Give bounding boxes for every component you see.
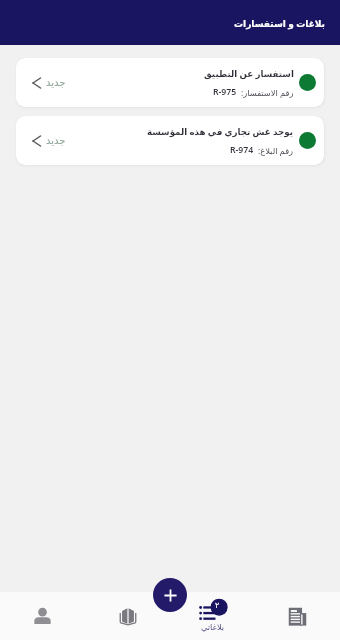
staticText: بلاغاتي xyxy=(201,622,225,632)
staticText: جديد xyxy=(46,77,66,89)
staticText: بلاغات و استفسارات xyxy=(234,17,325,29)
button[interactable]: Guide xyxy=(85,592,170,640)
staticText: ‏رقم الاستفسار:‏ xyxy=(241,87,294,98)
button[interactable]: Profile xyxy=(0,592,85,640)
staticText: جديد xyxy=(46,135,66,147)
staticText: استفسار عن التطبيق xyxy=(204,68,294,80)
button[interactable]: News xyxy=(255,592,340,640)
staticText: ‏رقم البلاغ:‏ xyxy=(258,145,294,156)
button[interactable]: جديد xyxy=(16,116,324,165)
button[interactable]: جديد xyxy=(16,58,324,107)
button[interactable]: ٢ xyxy=(170,592,255,640)
button[interactable]: Add new report xyxy=(153,578,187,612)
staticText: R-974 xyxy=(230,144,254,156)
staticText: يوجد غش تجاري في هذه المؤسسة xyxy=(147,126,294,138)
staticText: ٢ xyxy=(215,601,220,610)
staticText: R-975 xyxy=(213,86,237,98)
